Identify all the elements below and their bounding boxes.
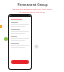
staticText: to collaborate in the cloud bbox=[19, 11, 45, 14]
staticText: Permanent Group bbox=[17, 2, 48, 7]
staticText: Simple and powerful tools for your team bbox=[12, 8, 52, 11]
button[interactable] bbox=[11, 60, 29, 64]
